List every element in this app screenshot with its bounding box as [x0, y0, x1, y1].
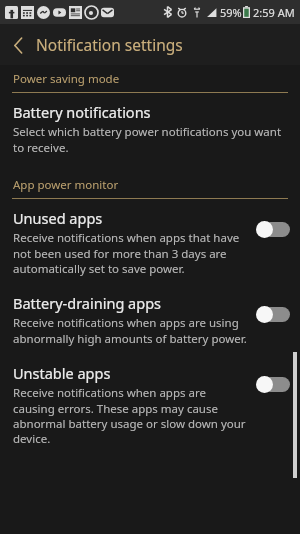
staticText: 59%: [220, 5, 242, 20]
staticText: Unused apps: [13, 208, 103, 228]
button[interactable]: Toggle Unused apps: [256, 221, 290, 238]
staticText: Power saving mode: [13, 71, 120, 87]
button[interactable]: Unstable apps: [0, 354, 300, 454]
staticText: Receive notifications when apps that hav…: [13, 230, 248, 276]
staticText: Select which battery power notifications…: [13, 124, 286, 155]
staticText: Battery-draining apps: [13, 293, 162, 313]
button[interactable]: Toggle Battery-draining apps: [256, 306, 290, 323]
staticText: 2:59 AM: [253, 5, 295, 20]
staticText: Receive notifications when apps are usin…: [13, 315, 248, 346]
button[interactable]: Toggle Unstable apps: [256, 376, 290, 393]
button[interactable]: Unused apps: [0, 199, 300, 284]
staticText: Battery notifications: [13, 102, 151, 122]
staticText: Unstable apps: [13, 363, 111, 383]
staticText: Notification settings: [36, 34, 183, 55]
button[interactable]: Battery notifications: [0, 93, 300, 163]
staticText: Receive notifications when apps are caus…: [13, 385, 248, 446]
button[interactable]: Back: [0, 27, 36, 63]
staticText: App power monitor: [13, 177, 119, 193]
button[interactable]: Battery-draining apps: [0, 284, 300, 354]
